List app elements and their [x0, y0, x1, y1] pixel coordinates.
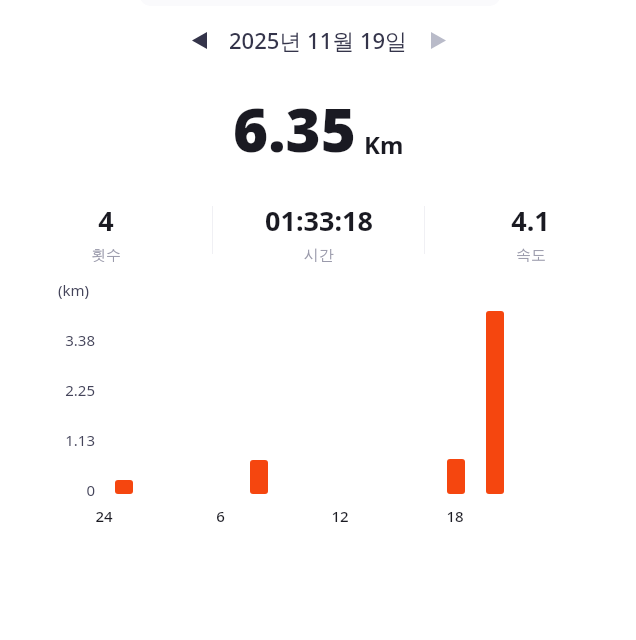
staticText: 속도: [516, 246, 546, 264]
staticText: 4.1: [511, 202, 550, 239]
staticText: 4: [98, 202, 114, 239]
staticText: 3.38: [65, 330, 95, 350]
staticText: 6.35: [233, 88, 356, 170]
staticText: 6: [216, 506, 225, 526]
staticText: 1.13: [65, 430, 95, 450]
staticText: 01:33:18: [265, 202, 373, 239]
staticText: (km): [58, 280, 90, 300]
button[interactable]: 이전 날짜: [177, 18, 221, 62]
staticText: 18: [446, 506, 464, 526]
staticText: 횟수: [91, 246, 121, 264]
staticText: 0: [86, 480, 95, 500]
staticText: 2025년 11월 19일: [229, 25, 408, 55]
button[interactable]: 다음 날짜: [416, 18, 460, 62]
staticText: 24: [95, 506, 113, 526]
staticText: 시간: [304, 246, 334, 264]
staticText: Km: [364, 128, 404, 161]
staticText: 2.25: [65, 380, 95, 400]
staticText: 12: [331, 506, 349, 526]
